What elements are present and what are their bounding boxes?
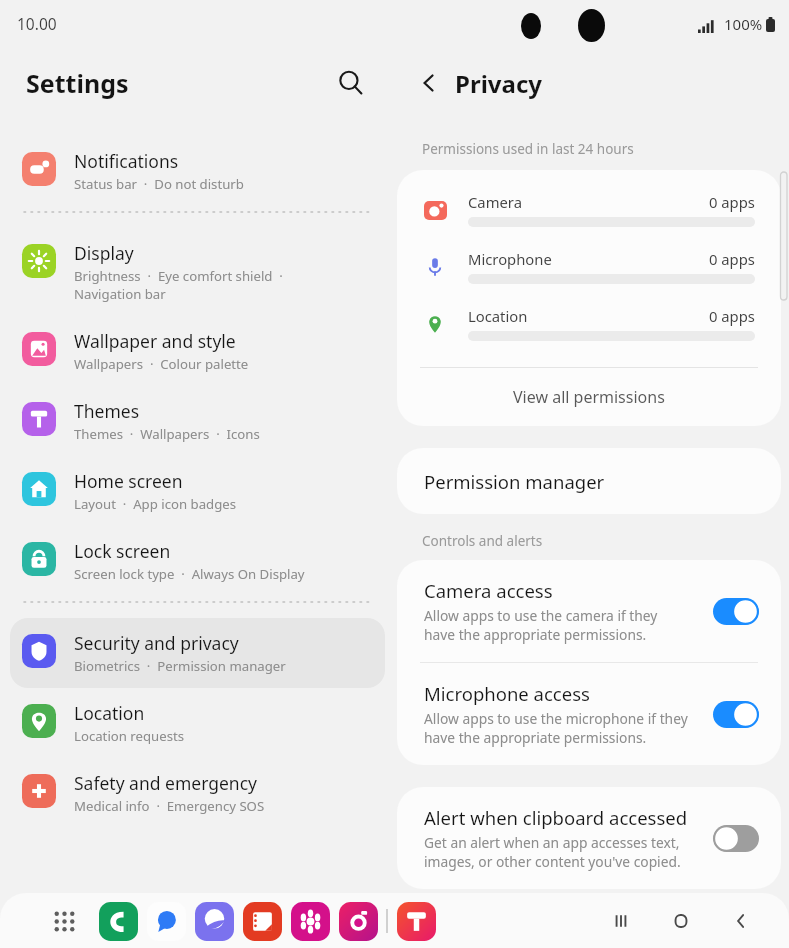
staticText: Camera bbox=[468, 192, 522, 212]
staticText: Allow apps to use the camera if they hav… bbox=[424, 606, 658, 644]
staticText: Privacy bbox=[455, 67, 542, 100]
button[interactable]: Lock screen bbox=[10, 526, 385, 596]
button[interactable]: Microphone bbox=[423, 249, 755, 284]
staticText: Permission manager bbox=[424, 469, 605, 494]
button[interactable]: Home bbox=[651, 896, 711, 946]
staticText: 0 apps bbox=[709, 192, 755, 212]
staticText: Biometrics · Permission manager bbox=[74, 657, 286, 675]
staticText: View all permissions bbox=[513, 386, 665, 408]
button[interactable]: View all permissions bbox=[397, 368, 781, 426]
staticText: Wallpapers · Colour palette bbox=[74, 355, 249, 373]
button[interactable]: Home screen bbox=[10, 456, 385, 526]
staticText: Display bbox=[74, 241, 134, 265]
staticText: Permissions used in last 24 hours bbox=[422, 140, 634, 158]
staticText: Themes · Wallpapers · Icons bbox=[74, 425, 260, 443]
button[interactable]: Internet bbox=[190, 897, 238, 945]
staticText: Safety and emergency bbox=[74, 771, 257, 795]
staticText: Controls and alerts bbox=[422, 532, 543, 550]
staticText: 0 apps bbox=[709, 306, 755, 326]
staticText: Wallpaper and style bbox=[74, 329, 236, 353]
button[interactable]: Display bbox=[10, 228, 385, 316]
button[interactable]: Search bbox=[331, 63, 371, 103]
staticText: Lock screen bbox=[74, 539, 171, 563]
staticText: Location bbox=[74, 701, 145, 725]
staticText: 100% bbox=[724, 14, 763, 34]
button[interactable]: Switch off bbox=[713, 825, 759, 852]
staticText: Security and privacy bbox=[74, 631, 239, 655]
button[interactable]: Switch on bbox=[713, 598, 759, 625]
staticText: Brightness · Eye comfort shield · Naviga… bbox=[74, 267, 283, 303]
button[interactable]: Location bbox=[10, 688, 385, 758]
staticText: Allow apps to use the microphone if they… bbox=[424, 709, 688, 747]
button[interactable]: Switch on bbox=[713, 701, 759, 728]
button[interactable]: Apps bbox=[44, 901, 84, 941]
button[interactable]: Camera bbox=[423, 192, 755, 227]
button[interactable]: Notifications bbox=[10, 136, 385, 206]
staticText: Location bbox=[468, 306, 528, 326]
button[interactable]: Recents bbox=[591, 896, 651, 946]
staticText: Screen lock type · Always On Display bbox=[74, 565, 305, 583]
staticText: Location requests bbox=[74, 727, 185, 745]
button[interactable]: Themes bbox=[10, 386, 385, 456]
staticText: Themes bbox=[74, 399, 140, 423]
staticText: Microphone access bbox=[424, 681, 590, 706]
button[interactable]: Wallpaper and style bbox=[10, 316, 385, 386]
button[interactable]: Safety and emergency bbox=[10, 758, 385, 828]
button[interactable]: Notes bbox=[238, 897, 286, 945]
button[interactable]: Themes bbox=[392, 897, 440, 945]
staticText: 0 apps bbox=[709, 249, 755, 269]
staticText: Get an alert when an app accesses text, … bbox=[424, 833, 681, 871]
button[interactable]: Gallery bbox=[286, 897, 334, 945]
button[interactable]: Camera bbox=[334, 897, 382, 945]
staticText: Microphone bbox=[468, 249, 552, 269]
button[interactable]: Back bbox=[409, 63, 449, 103]
staticText: Camera access bbox=[424, 578, 553, 603]
staticText: Home screen bbox=[74, 469, 183, 493]
button[interactable]: Security and privacy bbox=[10, 618, 385, 688]
staticText: Settings bbox=[26, 66, 129, 100]
button[interactable]: Microphone access bbox=[397, 663, 781, 765]
button[interactable]: Camera access bbox=[397, 560, 781, 662]
button[interactable]: Messages bbox=[142, 897, 190, 945]
staticText: 10.00 bbox=[17, 13, 57, 34]
staticText: Alert when clipboard accessed bbox=[424, 805, 688, 830]
button[interactable]: Back bbox=[711, 896, 771, 946]
staticText: Layout · App icon badges bbox=[74, 495, 237, 513]
staticText: Notifications bbox=[74, 149, 179, 173]
staticText: Status bar · Do not disturb bbox=[74, 175, 244, 193]
button[interactable]: Permission manager bbox=[397, 448, 781, 514]
button[interactable]: Phone bbox=[94, 897, 142, 945]
staticText: Medical info · Emergency SOS bbox=[74, 797, 265, 815]
button[interactable]: Location bbox=[423, 306, 755, 341]
button[interactable]: Alert when clipboard accessed bbox=[397, 787, 781, 889]
